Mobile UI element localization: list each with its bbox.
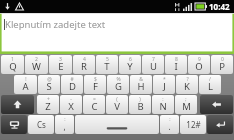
- staticText: D: [69, 80, 76, 93]
- button[interactable]: 4: [73, 55, 95, 74]
- staticText: &: [139, 76, 143, 83]
- button[interactable]: 8: [165, 55, 187, 74]
- staticText: 6: [129, 56, 132, 63]
- staticText: J: [163, 80, 166, 93]
- button[interactable]: 1: [1, 55, 24, 74]
- staticText: 10:42: [209, 1, 230, 12]
- staticText: $: [94, 76, 97, 83]
- staticText: Z: [45, 100, 51, 113]
- button[interactable]: 6: [119, 55, 141, 74]
- staticText: :: [64, 116, 66, 123]
- button[interactable]: Voice input: [1, 115, 27, 134]
- staticText: %: [116, 76, 121, 83]
- button[interactable]: ): [129, 95, 151, 114]
- staticText: 5: [106, 56, 109, 63]
- staticText: ,: [63, 121, 66, 132]
- button[interactable]: %: [107, 75, 129, 94]
- button[interactable]: Klepnutím zadejte text: [0, 13, 234, 54]
- button[interactable]: 5: [96, 55, 118, 74]
- button[interactable]: *: [153, 75, 175, 94]
- staticText: :: [169, 116, 171, 123]
- staticText: @: [47, 76, 52, 83]
- staticText: W: [32, 60, 41, 73]
- staticText: A: [22, 80, 29, 93]
- button[interactable]: #: [61, 75, 83, 94]
- staticText: ;: [185, 96, 187, 103]
- staticText: ?: [186, 76, 189, 83]
- staticText: L: [208, 80, 213, 93]
- staticText: K: [184, 80, 190, 93]
- staticText: !: [25, 76, 27, 83]
- button[interactable]: :: [55, 115, 74, 134]
- staticText: O: [195, 60, 203, 73]
- staticText: /: [209, 76, 211, 83]
- button[interactable]: &: [130, 75, 152, 94]
- staticText: S: [46, 80, 52, 93]
- staticText: #: [70, 76, 74, 83]
- button[interactable]: ?: [176, 75, 198, 94]
- button[interactable]: :: [152, 95, 174, 114]
- staticText: -: [70, 96, 72, 103]
- staticText: H: [137, 80, 145, 93]
- staticText: M: [182, 100, 191, 113]
- staticText: ): [139, 96, 141, 103]
- staticText: Klepnutím zadejte text: [5, 18, 106, 31]
- staticText: P: [219, 60, 225, 73]
- staticText: E: [58, 60, 64, 73]
- staticText: 12#: [186, 119, 201, 130]
- button[interactable]: Enter: [207, 115, 233, 134]
- staticText: =: [93, 96, 96, 103]
- staticText: 4: [83, 56, 86, 63]
- staticText: 7: [152, 56, 155, 63]
- staticText: T: [104, 60, 110, 73]
- button[interactable]: ;: [175, 95, 197, 114]
- staticText: N: [159, 100, 167, 113]
- staticText: R: [81, 60, 87, 73]
- staticText: 0: [221, 56, 224, 63]
- staticText: C: [91, 100, 98, 113]
- button[interactable]: $: [84, 75, 106, 94]
- staticText: 1: [11, 56, 14, 63]
- button[interactable]: :: [160, 115, 179, 134]
- button[interactable]: 9: [188, 55, 210, 74]
- button[interactable]: 3: [49, 55, 72, 74]
- staticText: 8: [175, 56, 178, 63]
- staticText: Y: [127, 60, 133, 73]
- staticText: 9: [198, 56, 201, 63]
- button[interactable]: @: [38, 75, 60, 94]
- button[interactable]: Backspace: [200, 95, 233, 114]
- staticText: Q: [9, 60, 17, 73]
- button[interactable]: 12#: [180, 115, 206, 134]
- button[interactable]: =: [83, 95, 105, 114]
- button[interactable]: !: [14, 75, 37, 94]
- button[interactable]: Cs: [28, 115, 54, 134]
- staticText: +: [47, 96, 50, 103]
- button[interactable]: Space: [75, 115, 159, 134]
- button[interactable]: -: [60, 95, 82, 114]
- button[interactable]: Shift: [1, 95, 34, 114]
- button[interactable]: 2: [25, 55, 48, 74]
- staticText: X: [68, 100, 74, 113]
- button[interactable]: 0: [211, 55, 233, 74]
- staticText: :: [162, 96, 164, 103]
- button[interactable]: (: [106, 95, 128, 114]
- button[interactable]: 7: [142, 55, 164, 74]
- staticText: Cs: [37, 119, 46, 130]
- button[interactable]: /: [199, 75, 221, 94]
- button[interactable]: +: [37, 95, 59, 114]
- staticText: (: [116, 96, 118, 103]
- staticText: G: [115, 80, 122, 93]
- staticText: B: [137, 100, 144, 113]
- staticText: *: [163, 76, 166, 83]
- staticText: 2: [35, 56, 38, 63]
- staticText: .: [168, 121, 171, 132]
- staticText: U: [150, 60, 157, 73]
- staticText: I: [174, 60, 178, 73]
- staticText: 3: [59, 56, 62, 63]
- staticText: F: [93, 80, 98, 93]
- staticText: V: [114, 100, 120, 113]
